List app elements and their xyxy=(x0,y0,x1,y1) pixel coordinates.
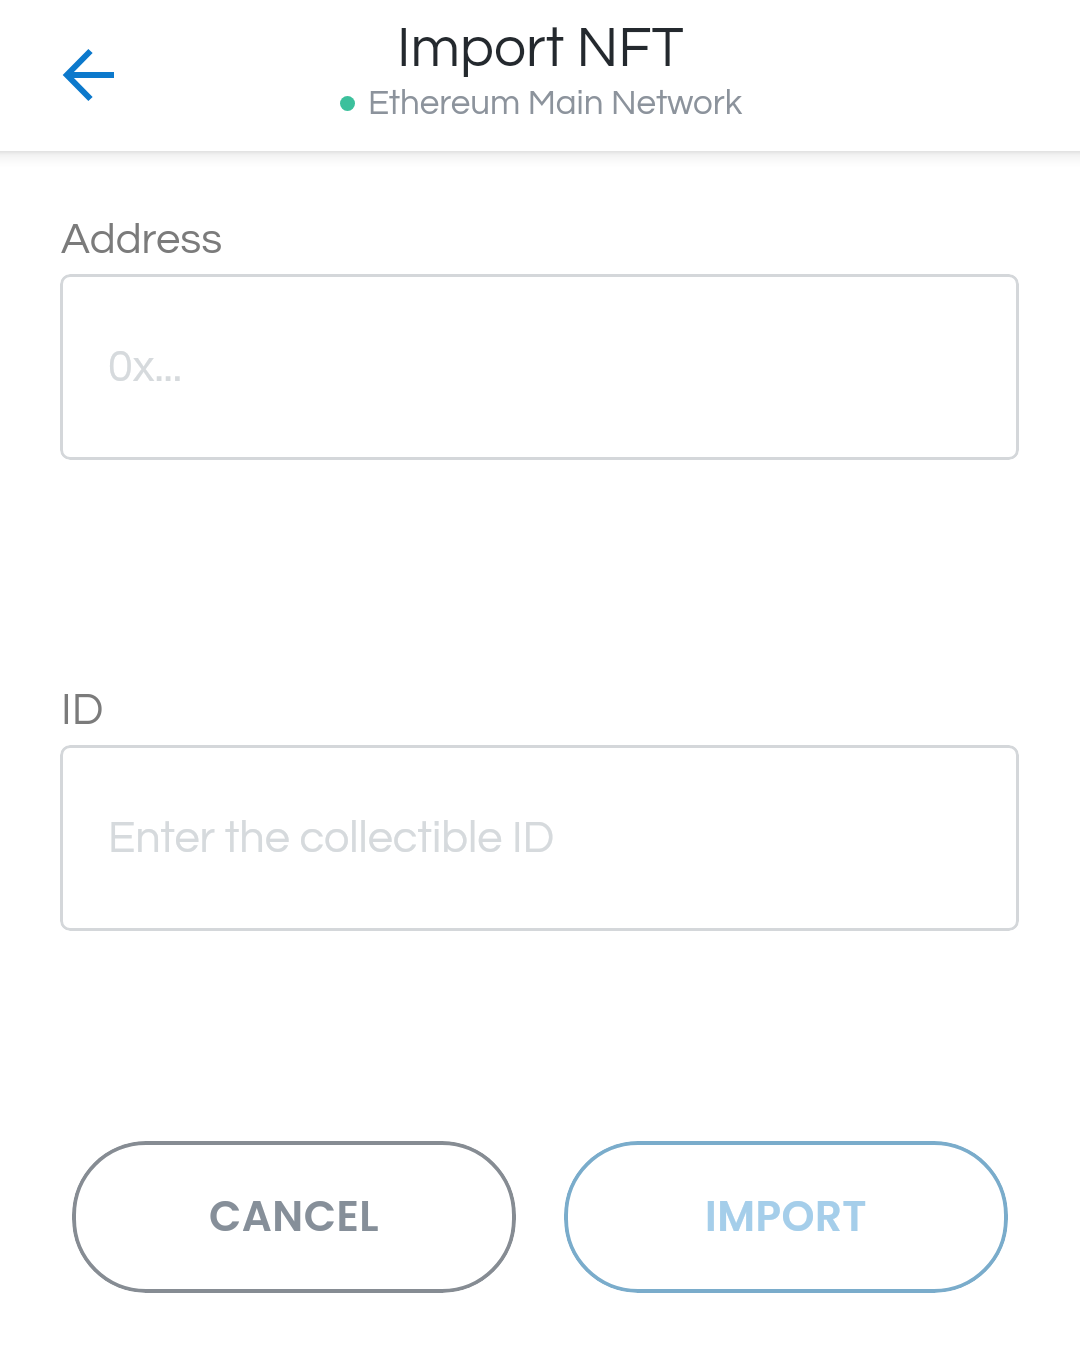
staticText: Enter the collectible ID xyxy=(108,815,555,861)
staticText: Import NFT xyxy=(397,19,684,78)
staticText: Address xyxy=(61,217,223,262)
staticText: CANCEL xyxy=(209,1187,380,1246)
button[interactable]: Enter the collectible ID xyxy=(60,745,1019,931)
button[interactable]: CANCEL xyxy=(72,1141,516,1293)
staticText: 0x... xyxy=(108,344,182,390)
button[interactable]: Back xyxy=(42,27,138,123)
staticText: IMPORT xyxy=(705,1187,868,1246)
staticText: ID xyxy=(61,687,104,733)
button[interactable]: 0x... xyxy=(60,274,1019,460)
staticText: Ethereum Main Network xyxy=(368,85,743,121)
button[interactable]: IMPORT xyxy=(564,1141,1008,1293)
